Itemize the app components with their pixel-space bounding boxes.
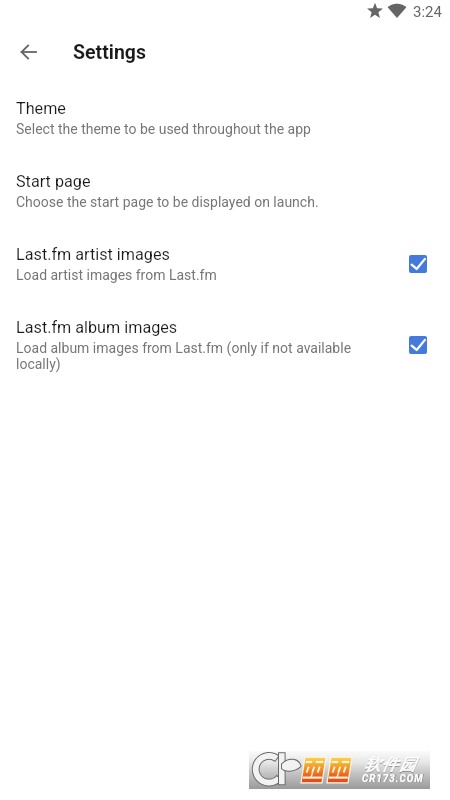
staticText: Settings [73,41,146,64]
button[interactable]: Toggle setting [409,336,427,354]
button[interactable]: Last.fm artist images [0,227,450,300]
staticText: Load album images from Last.fm (only if … [16,340,378,372]
staticText: 软件园 [364,756,417,776]
button[interactable]: Theme [0,82,450,154]
button[interactable]: Back [4,28,52,76]
staticText: Last.fm artist images [16,245,170,264]
staticText: Start page [16,172,91,191]
staticText: Choose the start page to be displayed on… [16,194,319,210]
staticText: 3:24 [413,3,442,21]
staticText: 软件园 [364,755,417,775]
staticText: Select the theme to be used throughout t… [16,121,311,137]
button[interactable]: Last.fm album images [0,300,450,389]
staticText: Last.fm album images [16,318,178,337]
staticText: CR173.COM [363,773,425,785]
staticText: CR173.COM [362,773,424,785]
button[interactable]: Toggle setting [409,255,427,273]
button[interactable]: Start page [0,154,450,227]
staticText: Theme [16,99,66,118]
staticText: Load artist images from Last.fm [16,267,217,283]
